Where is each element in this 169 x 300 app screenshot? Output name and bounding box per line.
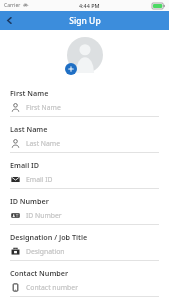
- staticText: Sign Up: [69, 15, 101, 27]
- button[interactable]: First Name: [0, 88, 169, 124]
- button[interactable]: Last Name: [0, 124, 169, 160]
- staticText: Email ID: [10, 160, 39, 170]
- staticText: ID Number: [26, 211, 62, 220]
- button[interactable]: Email ID: [0, 160, 169, 196]
- staticText: Carrier: [4, 2, 21, 9]
- staticText: Last Name: [26, 139, 61, 148]
- staticText: 4:44 PM: [79, 2, 100, 9]
- button[interactable]: Designation / Job Title: [0, 232, 169, 268]
- button[interactable]: Add profile photo: [66, 37, 104, 75]
- staticText: Designation / Job Title: [10, 232, 88, 242]
- staticText: Contact Number: [10, 268, 69, 278]
- button[interactable]: Back: [0, 11, 19, 30]
- staticText: Contact number: [26, 283, 78, 292]
- staticText: Designation: [26, 247, 65, 256]
- staticText: First Name: [26, 103, 61, 112]
- staticText: ID Number: [10, 196, 49, 206]
- staticText: First Name: [10, 88, 49, 98]
- staticText: Email ID: [26, 175, 53, 184]
- button[interactable]: ID Number: [0, 196, 169, 232]
- staticText: Last Name: [10, 124, 48, 134]
- button[interactable]: Contact Number: [0, 268, 169, 300]
